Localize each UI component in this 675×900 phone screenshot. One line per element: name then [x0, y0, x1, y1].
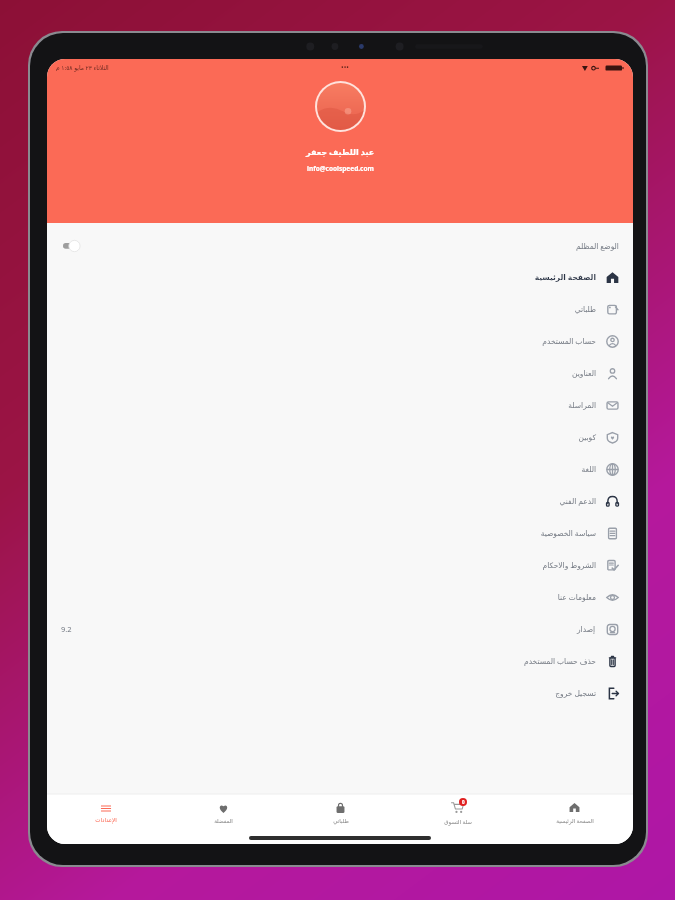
- staticText: الصفحة الرئيسية: [534, 272, 596, 282]
- staticText: الشروط والاحكام: [542, 560, 596, 570]
- staticText: المفضلة: [214, 818, 233, 824]
- button[interactable]: 0: [399, 794, 516, 832]
- button[interactable]: طلباتي: [282, 794, 399, 832]
- button[interactable]: حذف حساب المستخدم: [47, 645, 633, 677]
- staticText: 0: [462, 799, 465, 805]
- staticText: حساب المستخدم: [542, 336, 596, 346]
- button[interactable]: تسجيل خروج: [47, 677, 633, 709]
- button[interactable]: Profile photo: [317, 83, 364, 130]
- button[interactable]: اللغة: [47, 453, 633, 485]
- button[interactable]: الشروط والاحكام: [47, 549, 633, 581]
- staticText: العناوين: [572, 369, 596, 378]
- button[interactable]: الصفحة الرئيسية: [516, 794, 633, 832]
- button[interactable]: العناوين: [47, 357, 633, 389]
- staticText: حذف حساب المستخدم: [523, 656, 596, 666]
- staticText: info@coolspeed.com: [307, 164, 374, 173]
- staticText: طلباتي: [574, 305, 596, 314]
- staticText: الصفحة الرئيسية: [556, 817, 594, 824]
- button[interactable]: حساب المستخدم: [47, 325, 633, 357]
- button[interactable]: الوضع المظلم: [47, 230, 633, 261]
- button[interactable]: كوبين: [47, 421, 633, 453]
- staticText: سياسة الخصوصية: [540, 528, 596, 538]
- staticText: المراسلة: [568, 401, 596, 410]
- button[interactable]: الإعدادات: [47, 794, 165, 832]
- button[interactable]: سياسة الخصوصية: [47, 517, 633, 549]
- staticText: 9.2: [61, 624, 72, 634]
- button[interactable]: معلومات عنا: [47, 581, 633, 613]
- button[interactable]: 9.2: [47, 613, 633, 645]
- staticText: إصدار: [577, 625, 596, 634]
- staticText: طلباتي: [333, 818, 349, 824]
- button[interactable]: المفضلة: [165, 794, 282, 832]
- staticText: معلومات عنا: [557, 592, 596, 602]
- staticText: عبد اللطيف جعفر: [306, 146, 375, 157]
- button[interactable]: الدعم الفني: [47, 485, 633, 517]
- staticText: الثلاثاء ٢٣ مايو ١:٥٨ م: [56, 64, 109, 72]
- staticText: الإعدادات: [95, 817, 117, 823]
- staticText: كوبين: [578, 433, 596, 442]
- button[interactable]: المراسلة: [47, 389, 633, 421]
- staticText: الدعم الفني: [559, 496, 596, 506]
- button[interactable]: الصفحة الرئيسية: [47, 261, 633, 293]
- staticText: •••: [341, 63, 349, 73]
- staticText: اللغة: [581, 465, 596, 474]
- staticText: سلة التسوق: [444, 818, 472, 825]
- staticText: الوضع المظلم: [576, 241, 619, 251]
- button[interactable]: طلباتي: [47, 293, 633, 325]
- staticText: تسجيل خروج: [555, 688, 596, 698]
